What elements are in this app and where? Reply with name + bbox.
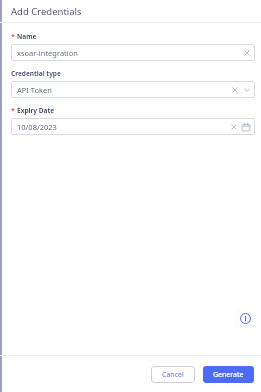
staticText: Cancel [162, 370, 184, 380]
button[interactable]: API Token [11, 81, 255, 98]
staticText: 10/08/2023 [17, 122, 231, 132]
staticText: Expiry Date [17, 106, 55, 115]
button[interactable]: Generate [203, 366, 254, 383]
staticText: API Token [17, 85, 232, 95]
staticText: Name [17, 32, 37, 41]
staticText: xsoar-integration [17, 48, 244, 58]
staticText: Credential type [11, 69, 61, 78]
staticText: * [11, 106, 15, 115]
staticText: * [11, 32, 15, 41]
staticText: Add Credentials [11, 5, 82, 18]
button[interactable]: Cancel [151, 366, 195, 383]
button[interactable]: 10/08/2023 [11, 118, 255, 135]
staticText: Generate [213, 370, 244, 380]
button[interactable]: Help [235, 308, 256, 329]
button[interactable]: xsoar-integration [11, 44, 255, 61]
